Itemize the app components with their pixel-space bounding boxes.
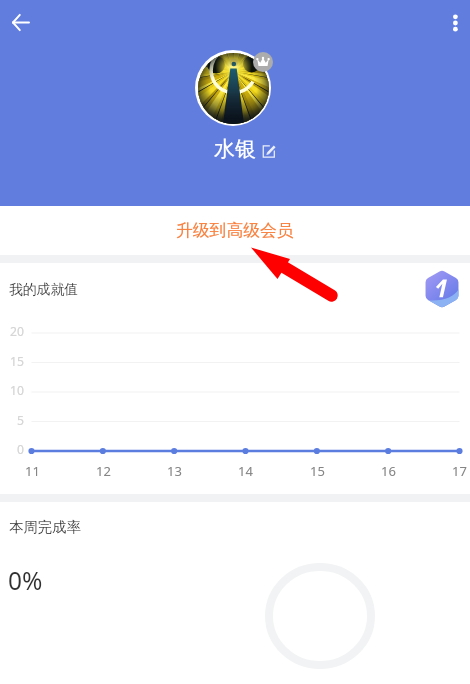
button[interactable]: Edit name <box>262 144 276 158</box>
button[interactable]: Profile photo <box>195 50 271 126</box>
staticText: 17 <box>452 462 467 479</box>
staticText: 20 <box>10 323 24 339</box>
button[interactable]: 升级到高级会员 <box>0 206 470 255</box>
button[interactable]: More options <box>438 7 470 39</box>
staticText: 16 <box>381 462 396 479</box>
button[interactable]: Back <box>3 5 38 40</box>
staticText: 本周完成率 <box>9 518 81 536</box>
staticText: 13 <box>167 462 182 479</box>
staticText: 我的成就值 <box>9 281 78 298</box>
staticText: 水银 <box>214 136 256 162</box>
staticText: 0 <box>17 441 24 457</box>
staticText: 15 <box>310 462 325 479</box>
staticText: 10 <box>10 382 24 398</box>
staticText: 升级到高级会员 <box>176 220 294 241</box>
staticText: 12 <box>96 462 111 479</box>
staticText: 14 <box>238 462 253 479</box>
staticText: 5 <box>17 412 24 428</box>
staticText: 11 <box>25 462 40 479</box>
button[interactable]: Level 1 badge <box>423 270 461 308</box>
staticText: 0% <box>8 564 43 597</box>
staticText: 15 <box>10 353 24 369</box>
button[interactable]: VIP badge <box>253 52 273 72</box>
